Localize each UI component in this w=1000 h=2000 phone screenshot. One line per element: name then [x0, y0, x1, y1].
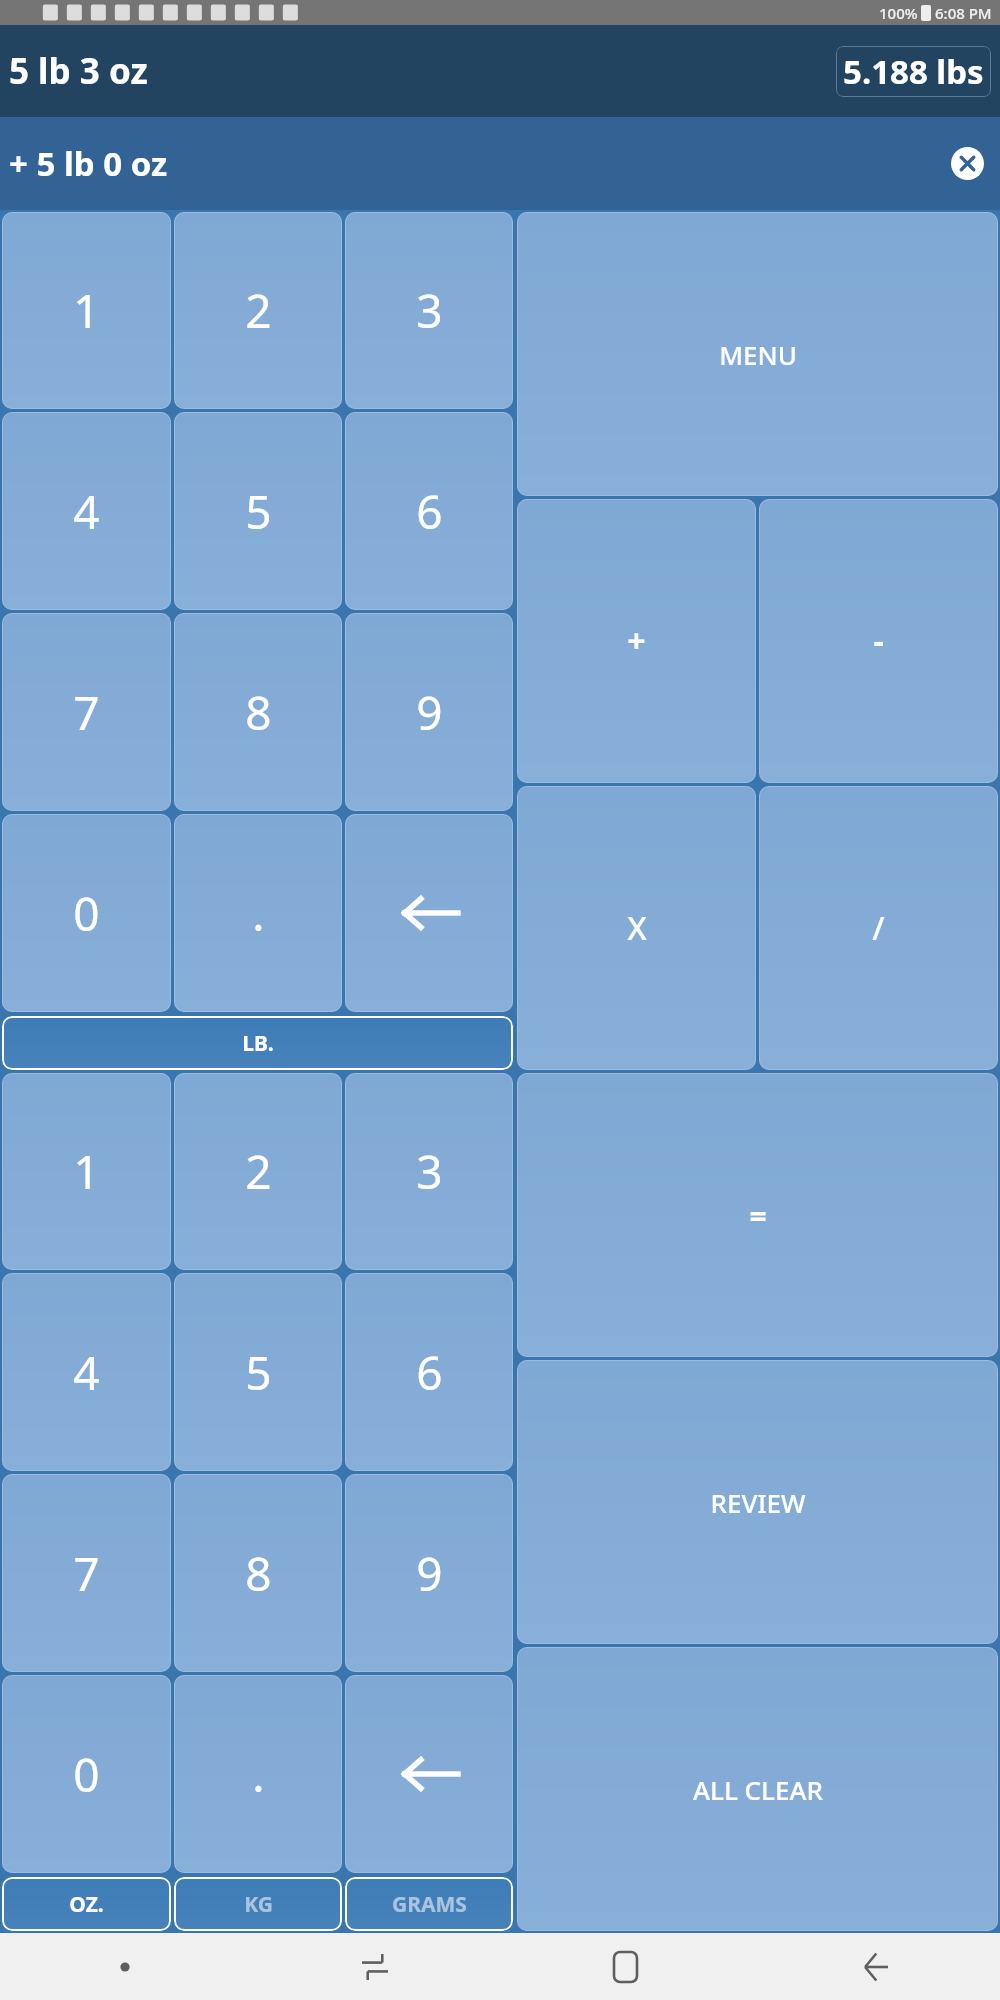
button[interactable]: 4 — [2, 412, 171, 610]
button[interactable]: . — [174, 814, 342, 1012]
button[interactable]: REVIEW — [517, 1360, 998, 1644]
staticText: 8 — [245, 681, 272, 744]
button[interactable]: Backspace — [345, 814, 513, 1012]
button[interactable]: 1 — [2, 1073, 171, 1270]
button[interactable]: + — [517, 499, 756, 783]
button[interactable]: = — [517, 1073, 998, 1357]
staticText: 2 — [245, 1140, 272, 1203]
button[interactable]: 7 — [2, 1474, 171, 1672]
staticText: ALL CLEAR — [693, 1772, 823, 1807]
button[interactable]: Menu dot — [0, 1933, 250, 2000]
staticText: LB. — [242, 1029, 274, 1058]
button[interactable]: LB. — [2, 1016, 513, 1070]
staticText: 5 lb 3 oz — [9, 47, 148, 95]
button[interactable]: MENU — [517, 212, 998, 496]
button[interactable]: 3 — [345, 212, 513, 409]
staticText: . — [252, 1743, 265, 1806]
staticText: 8 — [245, 1542, 272, 1605]
button[interactable]: Recents — [250, 1933, 500, 2000]
staticText: GRAMS — [392, 1890, 467, 1919]
staticText: / — [872, 906, 885, 950]
staticText: 100% — [879, 3, 918, 23]
button[interactable]: Backspace — [345, 1675, 513, 1873]
staticText: 4 — [73, 1341, 100, 1404]
staticText: 3 — [416, 279, 443, 342]
button[interactable]: 8 — [174, 1474, 342, 1672]
staticText: 9 — [416, 681, 443, 744]
staticText: 9 — [416, 1542, 443, 1605]
button[interactable]: ALL CLEAR — [517, 1647, 998, 1931]
button[interactable]: 3 — [345, 1073, 513, 1270]
button[interactable]: 1 — [2, 212, 171, 409]
staticText: 6 — [416, 480, 443, 543]
button[interactable]: 0 — [2, 814, 171, 1012]
staticText: 0 — [73, 1743, 100, 1806]
button[interactable]: 8 — [174, 613, 342, 811]
button[interactable]: 4 — [2, 1273, 171, 1471]
button[interactable]: X — [517, 786, 756, 1070]
staticText: 1 — [73, 1140, 100, 1203]
staticText: 7 — [73, 681, 100, 744]
staticText: MENU — [719, 337, 797, 372]
staticText: 7 — [73, 1542, 100, 1605]
staticText: 1 — [73, 279, 100, 342]
button[interactable]: OZ. — [2, 1877, 171, 1931]
staticText: OZ. — [69, 1890, 104, 1919]
staticText: 5 — [245, 1341, 272, 1404]
button[interactable]: 6 — [345, 1273, 513, 1471]
button[interactable]: 5 — [174, 412, 342, 610]
button[interactable]: 7 — [2, 613, 171, 811]
staticText: 5.188 lbs — [843, 49, 984, 94]
staticText: . — [252, 882, 265, 945]
staticText: 6 — [416, 1341, 443, 1404]
staticText: 3 — [416, 1140, 443, 1203]
button[interactable]: - — [759, 499, 998, 783]
staticText: 4 — [73, 480, 100, 543]
staticText: REVIEW — [710, 1485, 806, 1520]
button[interactable]: 2 — [174, 212, 342, 409]
staticText: + 5 lb 0 oz — [9, 141, 168, 186]
staticText: + — [627, 619, 646, 663]
button[interactable]: 5 — [174, 1273, 342, 1471]
button[interactable]: Back — [750, 1933, 1000, 2000]
button[interactable]: / — [759, 786, 998, 1070]
button[interactable]: 5.188 lbs — [843, 49, 984, 94]
staticText: = — [749, 1195, 767, 1236]
staticText: X — [627, 906, 647, 950]
staticText: 6:08 PM — [935, 3, 992, 23]
button[interactable]: . — [174, 1675, 342, 1873]
button[interactable]: GRAMS — [345, 1877, 513, 1931]
button[interactable]: Clear entry — [951, 147, 984, 180]
button[interactable]: 0 — [2, 1675, 171, 1873]
button[interactable]: 9 — [345, 1474, 513, 1672]
button[interactable]: 6 — [345, 412, 513, 610]
button[interactable]: 9 — [345, 613, 513, 811]
button[interactable]: Home — [500, 1933, 750, 2000]
staticText: 2 — [245, 279, 272, 342]
staticText: 5 — [245, 480, 272, 543]
button[interactable]: 2 — [174, 1073, 342, 1270]
staticText: 0 — [73, 882, 100, 945]
staticText: KG — [244, 1890, 273, 1919]
button[interactable]: KG — [174, 1877, 342, 1931]
staticText: - — [873, 619, 884, 663]
